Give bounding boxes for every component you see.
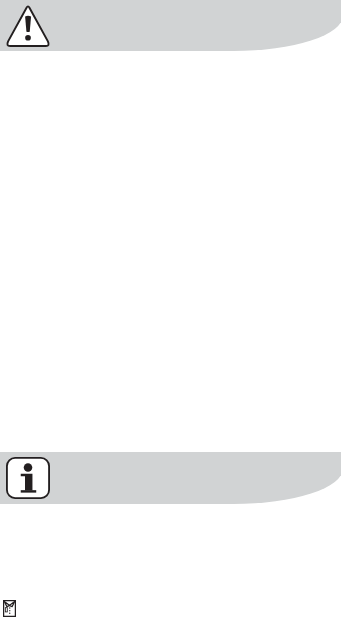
button[interactable]: Shirt bbox=[3, 600, 16, 617]
button[interactable]: Warning notice bbox=[0, 0, 341, 51]
button[interactable]: Information notice bbox=[0, 452, 341, 504]
